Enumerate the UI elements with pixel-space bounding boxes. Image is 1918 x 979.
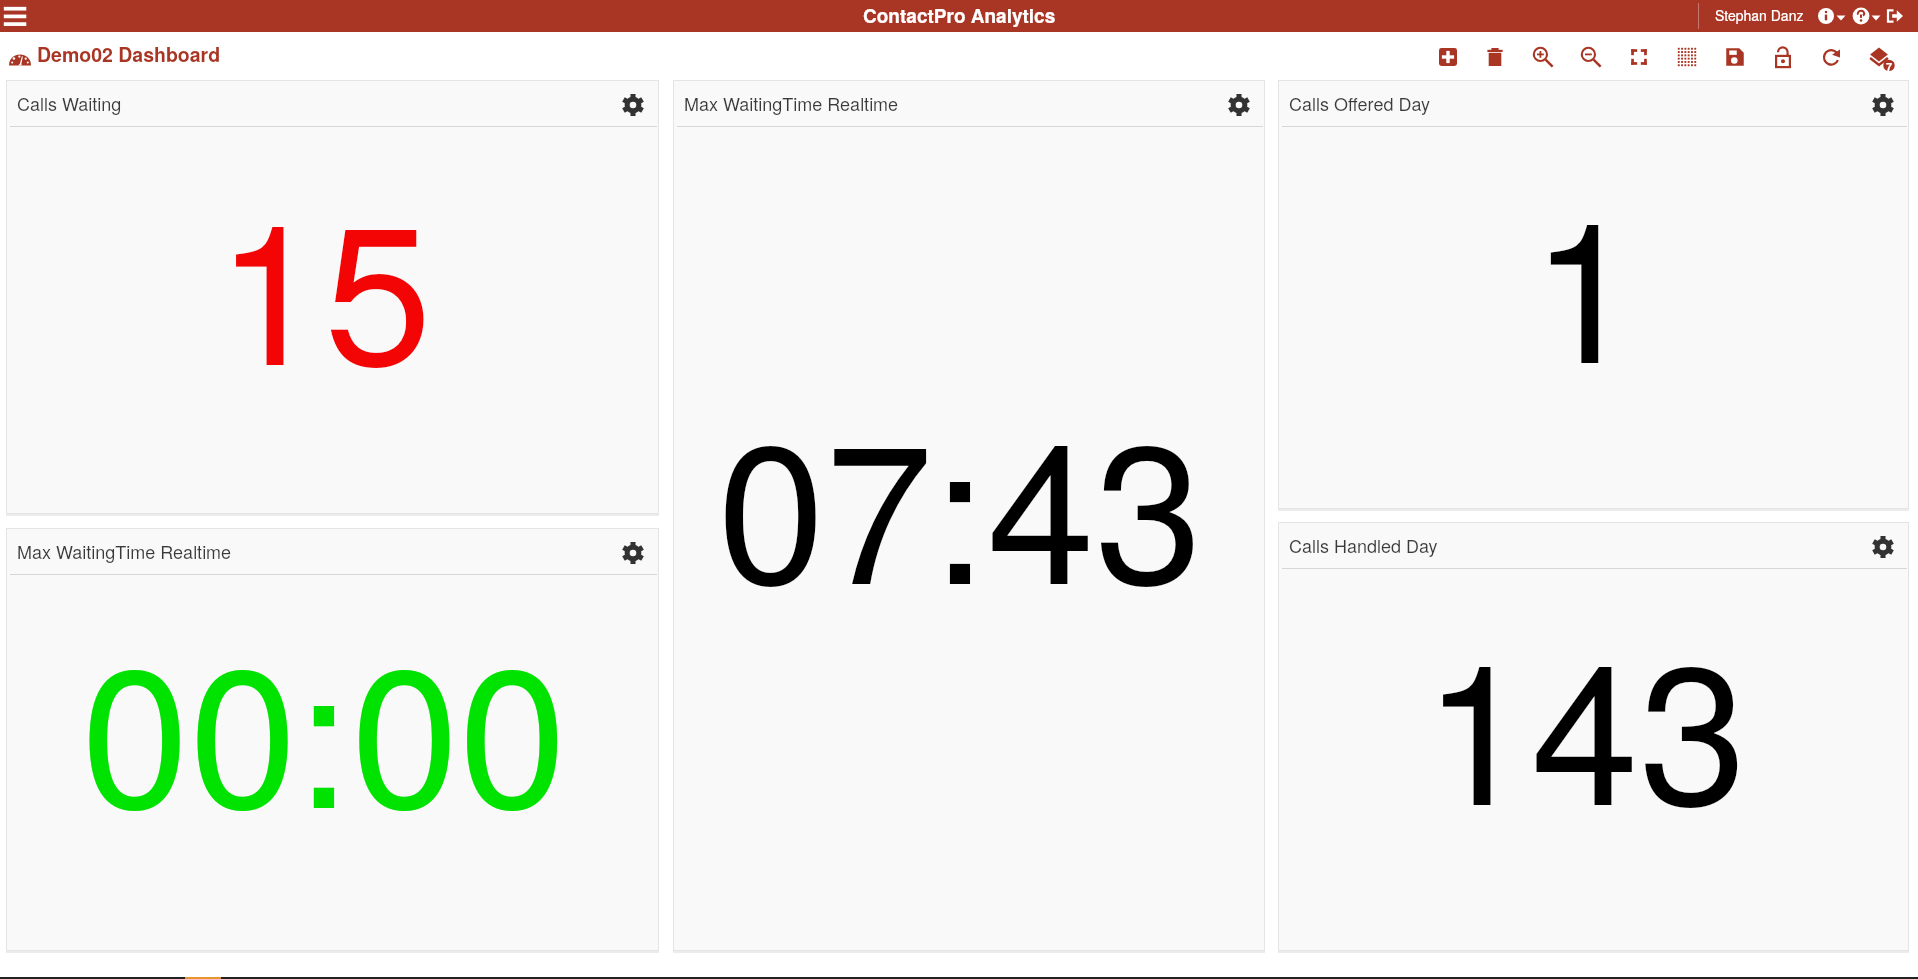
staticText: 7 — [1886, 59, 1893, 75]
staticText: Max WaitingTime Realtime — [684, 90, 899, 116]
button[interactable]: Widget settings — [622, 542, 644, 564]
button[interactable]: Info — [1815, 5, 1837, 27]
button[interactable]: Widget settings — [1872, 536, 1894, 558]
button[interactable]: Widget settings — [622, 94, 644, 116]
staticText: 143 — [1423, 582, 1747, 860]
staticText: Stephan Danz — [1715, 5, 1804, 25]
button[interactable]: Widget settings — [1872, 94, 1894, 116]
button[interactable]: Layers — [1865, 43, 1893, 71]
staticText: ContactPro Analytics — [863, 2, 1056, 29]
button[interactable]: Log out — [1884, 5, 1906, 27]
button[interactable]: Save — [1721, 43, 1749, 71]
staticText: Demo02 Dashboard — [37, 40, 221, 68]
staticText: Calls Waiting — [17, 90, 122, 116]
button[interactable]: Refresh — [1818, 43, 1846, 71]
staticText: 1 — [1531, 140, 1639, 418]
button[interactable]: Zoom out — [1577, 43, 1605, 71]
button[interactable]: Grid — [1673, 43, 1701, 71]
button[interactable]: Unlock — [1769, 43, 1797, 71]
button[interactable]: Zoom in — [1529, 43, 1557, 71]
button[interactable]: Fullscreen — [1625, 43, 1653, 71]
staticText: 00:00 — [81, 585, 567, 863]
staticText: 07:43 — [717, 361, 1203, 639]
button[interactable]: Help — [1850, 5, 1872, 27]
button[interactable]: Menu — [0, 0, 32, 32]
button[interactable]: Delete — [1481, 43, 1509, 71]
staticText: Max WaitingTime Realtime — [17, 538, 232, 564]
staticText: Calls Offered Day — [1289, 90, 1431, 116]
button[interactable]: Add widget — [1434, 43, 1462, 71]
staticText: Calls Handled Day — [1289, 532, 1438, 558]
staticText: 15 — [216, 142, 432, 420]
button[interactable]: Widget settings — [1228, 94, 1250, 116]
